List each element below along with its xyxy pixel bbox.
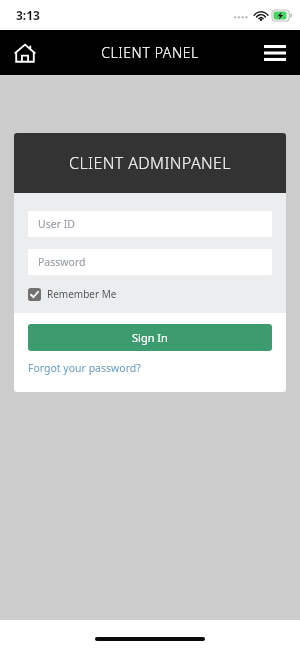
staticText: 3:13 — [16, 7, 40, 23]
staticText: Password — [38, 255, 86, 269]
staticText: Remember Me — [47, 287, 117, 301]
staticText: User ID — [38, 217, 75, 231]
button[interactable]: Forgot your password? — [28, 361, 141, 375]
staticText: CLIENT ADMINPANEL — [69, 152, 231, 174]
button[interactable]: Menu — [256, 34, 294, 72]
button[interactable]: User ID — [28, 211, 272, 237]
button[interactable]: Remember Me — [28, 287, 117, 301]
staticText: CLIENT PANEL — [101, 43, 199, 62]
button[interactable]: Sign In — [28, 324, 272, 351]
button[interactable]: Password — [28, 249, 272, 275]
staticText: Sign In — [132, 330, 168, 345]
button[interactable]: Home — [6, 34, 44, 72]
staticText: Forgot your password? — [28, 361, 141, 375]
